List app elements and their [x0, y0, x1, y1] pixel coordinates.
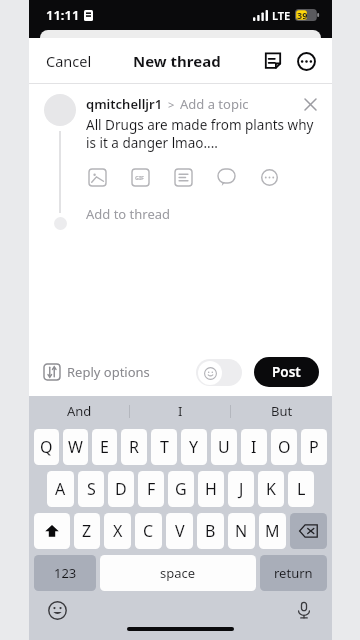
button[interactable]: And [29, 396, 130, 426]
staticText: I [251, 436, 257, 458]
staticText: 11:11 [46, 6, 80, 24]
staticText: O [278, 436, 291, 458]
staticText: J [239, 478, 244, 500]
button[interactable]: C [135, 513, 162, 549]
button[interactable]: B [197, 513, 224, 549]
button[interactable]: M [259, 513, 286, 549]
button[interactable]: S [78, 471, 104, 507]
button[interactable]: H [198, 471, 224, 507]
button[interactable]: But [231, 396, 332, 426]
staticText: L [297, 478, 306, 500]
button[interactable]: Dictation [292, 598, 316, 622]
button[interactable]: D [108, 471, 134, 507]
staticText: All Drugs are made from plants why is it… [86, 116, 319, 152]
button[interactable]: Add a topic [180, 95, 249, 113]
button[interactable]: space [100, 555, 256, 591]
button[interactable]: A [47, 471, 74, 507]
staticText: qmitchelljr1 [86, 95, 163, 113]
staticText: And [67, 402, 92, 420]
button[interactable]: E [92, 429, 117, 465]
staticText: R [129, 436, 139, 458]
staticText: > [168, 97, 175, 112]
staticText: M [265, 520, 280, 542]
button[interactable]: Post [254, 357, 319, 387]
staticText: Q [40, 436, 53, 458]
button[interactable]: return [260, 555, 327, 591]
button[interactable]: W [63, 429, 88, 465]
button[interactable]: J [228, 471, 254, 507]
button[interactable]: K [258, 471, 284, 507]
staticText: space [160, 564, 196, 582]
button[interactable]: Emoji [45, 598, 69, 622]
staticText: Add to thread [86, 205, 171, 223]
staticText: Y [189, 436, 199, 458]
staticText: B [205, 520, 216, 542]
button[interactable]: Z [74, 513, 100, 549]
button[interactable]: O [271, 429, 297, 465]
staticText: X [113, 520, 123, 542]
button[interactable]: T [151, 429, 177, 465]
button[interactable]: Drafts [260, 48, 286, 74]
staticText: Add a topic [180, 95, 249, 113]
button[interactable]: P [301, 429, 327, 465]
button[interactable]: Add photo [86, 166, 108, 188]
staticText: GIF [135, 174, 145, 181]
button[interactable]: Cancel [44, 45, 94, 77]
button[interactable]: G [168, 471, 194, 507]
button[interactable]: Add poll [172, 166, 194, 188]
button[interactable]: Reply options [44, 363, 150, 381]
button[interactable]: F [138, 471, 164, 507]
staticText: 39 [297, 9, 308, 21]
button[interactable]: Add to thread [86, 205, 171, 223]
button[interactable]: Remove post [301, 95, 319, 113]
staticText: I [178, 402, 183, 420]
staticText: Z [82, 520, 92, 542]
button[interactable]: Q [34, 429, 59, 465]
staticText: V [175, 520, 185, 542]
button[interactable]: X [104, 513, 131, 549]
button[interactable]: Y [181, 429, 207, 465]
staticText: return [274, 564, 313, 582]
staticText: H [205, 478, 217, 500]
button[interactable]: I [130, 396, 231, 426]
staticText: But [271, 402, 293, 420]
button[interactable]: Add GIF [129, 166, 151, 188]
button[interactable]: N [228, 513, 255, 549]
button[interactable]: U [211, 429, 237, 465]
button[interactable]: Toggle [196, 359, 242, 386]
button[interactable]: Add quote [215, 166, 237, 188]
staticText: U [218, 436, 230, 458]
staticText: P [309, 436, 319, 458]
staticText: T [160, 436, 169, 458]
button[interactable]: R [121, 429, 147, 465]
staticText: N [235, 520, 248, 542]
staticText: G [175, 478, 187, 500]
staticText: LTE [272, 8, 291, 23]
staticText: Reply options [67, 363, 150, 381]
button[interactable]: More [258, 166, 280, 188]
staticText: K [266, 478, 276, 500]
staticText: W [68, 436, 83, 458]
button[interactable]: 123 [34, 555, 96, 591]
staticText: S [87, 478, 96, 500]
staticText: A [55, 478, 66, 500]
staticText: F [147, 478, 156, 500]
staticText: New thread [133, 51, 221, 71]
button[interactable]: L [288, 471, 314, 507]
button[interactable]: Shift [34, 513, 70, 549]
staticText: Post [272, 363, 301, 381]
button[interactable]: V [166, 513, 193, 549]
button[interactable]: Backspace [290, 513, 327, 549]
staticText: E [100, 436, 109, 458]
button[interactable]: More options [293, 48, 319, 74]
staticText: Cancel [46, 51, 92, 71]
staticText: D [115, 478, 127, 500]
staticText: C [143, 520, 154, 542]
button[interactable]: I [241, 429, 267, 465]
staticText: 123 [54, 564, 77, 582]
